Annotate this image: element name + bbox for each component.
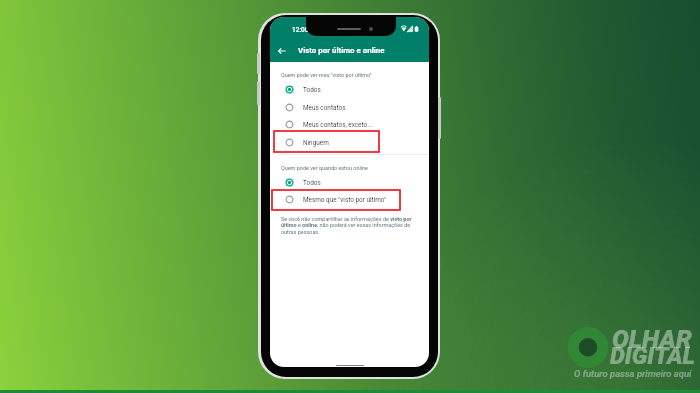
staticText: Ninguém: [303, 139, 329, 147]
staticText: OLHAR: [612, 325, 692, 354]
button[interactable]: Mesmo que "visto por último": [270, 191, 429, 208]
staticText: Meus contatos, exceto...: [303, 121, 373, 129]
button[interactable]: Todos: [270, 174, 429, 191]
staticText: 12:00: [292, 26, 309, 34]
staticText: Quem pode ver quando estou online: [281, 165, 368, 171]
button[interactable]: Meus contatos: [270, 99, 429, 116]
button[interactable]: Todos: [270, 81, 429, 98]
staticText: Se você não compartilhar as informações …: [281, 216, 416, 236]
staticText: Visto por último e online: [298, 46, 385, 55]
staticText: DIGITAL: [610, 342, 695, 370]
staticText: Meus contatos: [303, 104, 346, 112]
button[interactable]: Meus contatos, exceto...: [270, 116, 429, 133]
staticText: O futuro passa primeiro aqui: [574, 368, 692, 379]
staticText: Mesmo que "visto por último": [303, 196, 387, 204]
staticText: Todos: [303, 179, 321, 187]
staticText: Quem pode ver meu "visto por último": [281, 72, 372, 78]
button[interactable]: Ninguém: [270, 134, 429, 151]
button[interactable]: Back: [271, 40, 292, 61]
staticText: Todos: [303, 86, 321, 94]
